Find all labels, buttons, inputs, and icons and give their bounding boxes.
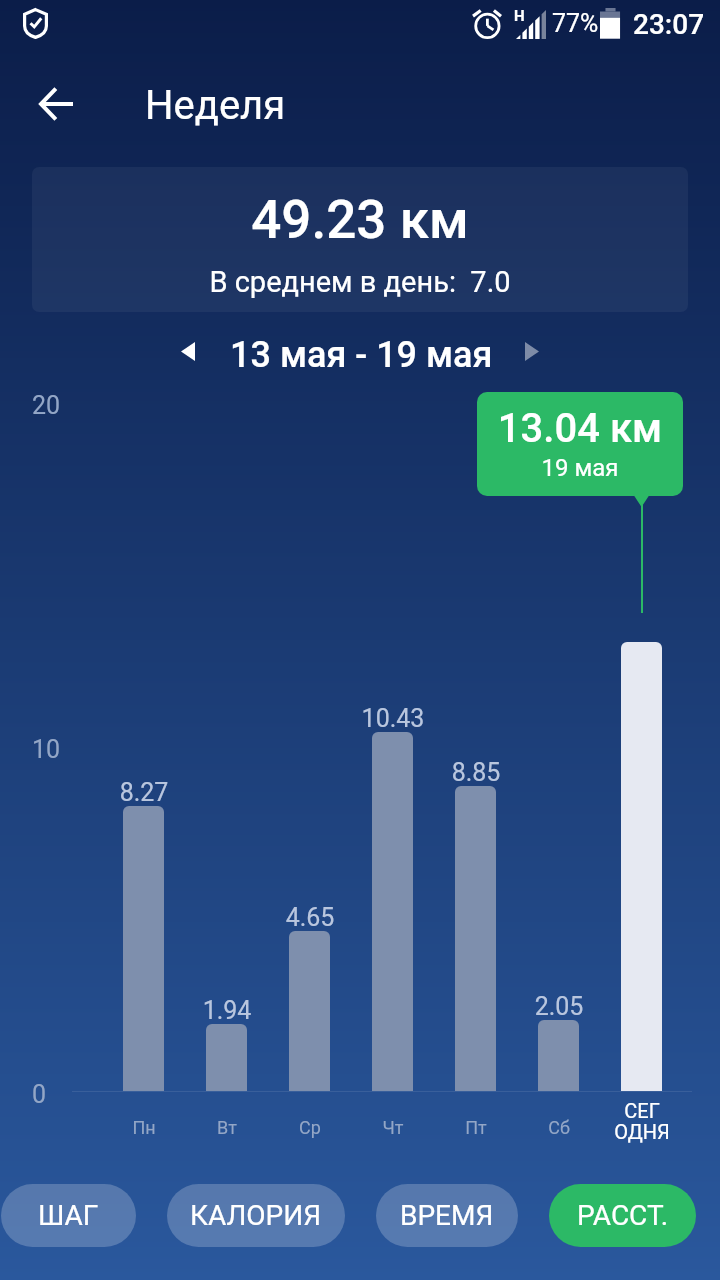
button[interactable]: Next week [511, 332, 553, 370]
button[interactable] [538, 1020, 579, 1091]
staticText: 23:07 [633, 8, 705, 41]
staticText: РАССТ. [577, 1199, 669, 1232]
staticText: Неделя [145, 82, 286, 129]
button[interactable]: 49.23 км [32, 167, 688, 312]
button[interactable] [206, 1024, 247, 1091]
staticText: 1.94 [167, 996, 287, 1025]
button[interactable]: Back [26, 74, 86, 134]
staticText: ШАГ [38, 1199, 99, 1232]
button[interactable]: ШАГ [1, 1184, 136, 1247]
button[interactable]: ВРЕМЯ [376, 1184, 518, 1247]
staticText: 10 [32, 735, 61, 764]
button[interactable] [621, 642, 662, 1091]
staticText: 13 мая - 19 мая [230, 334, 493, 376]
staticText: Пт [416, 1117, 536, 1138]
staticText: 49.23 км [32, 189, 688, 251]
staticText: 2.05 [499, 992, 619, 1021]
button[interactable] [289, 931, 330, 1091]
staticText: Ср [250, 1117, 370, 1138]
staticText: В среднем в день: 7.0 [32, 265, 688, 299]
staticText: 4.65 [250, 903, 370, 932]
staticText: СЕГ ОДНЯ [582, 1099, 702, 1144]
staticText: 13.04 км [477, 405, 683, 452]
staticText: 8.27 [84, 778, 204, 807]
button[interactable] [123, 806, 164, 1091]
staticText: 10.43 [333, 704, 453, 733]
staticText: 8.85 [416, 758, 536, 787]
button[interactable]: КАЛОРИЯ [167, 1184, 345, 1247]
staticText: КАЛОРИЯ [190, 1199, 322, 1232]
staticText: Сб [499, 1117, 619, 1138]
staticText: 19 мая [477, 454, 683, 482]
staticText: H [514, 7, 525, 25]
button[interactable] [455, 786, 496, 1091]
staticText: 0 [32, 1080, 47, 1109]
staticText: 20 [32, 391, 61, 420]
staticText: Вт [167, 1117, 287, 1138]
staticText: 77% [552, 9, 599, 38]
staticText: ВРЕМЯ [400, 1199, 494, 1232]
button[interactable]: Previous week [167, 332, 209, 370]
staticText: Чт [333, 1117, 453, 1138]
staticText: Пн [84, 1117, 204, 1138]
button[interactable]: 13.04 км [477, 392, 683, 496]
button[interactable]: РАССТ. [549, 1184, 696, 1247]
